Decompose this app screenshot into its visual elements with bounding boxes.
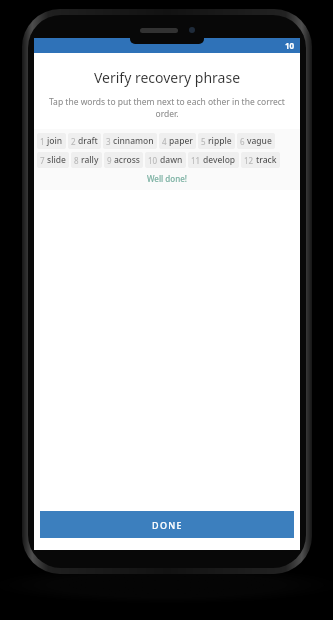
staticText: 2 <box>71 136 76 147</box>
staticText: ripple <box>208 135 232 147</box>
button[interactable]: Word 3 cinnamon <box>103 133 157 149</box>
staticText: DONE <box>152 519 183 531</box>
staticText: Verify recovery phrase <box>34 68 300 87</box>
staticText: 10 <box>148 155 158 166</box>
staticText: paper <box>169 135 193 147</box>
staticText: 11 <box>191 155 201 166</box>
button[interactable]: Word 1 join <box>37 133 66 149</box>
staticText: 12 <box>244 155 254 166</box>
staticText: 10 <box>285 40 295 51</box>
staticText: rally <box>81 154 99 166</box>
button[interactable]: Word 10 dawn <box>145 152 186 168</box>
staticText: 9 <box>107 155 112 166</box>
button[interactable]: Word 4 paper <box>159 133 196 149</box>
staticText: track <box>256 154 277 166</box>
button[interactable]: Word 12 track <box>241 152 280 168</box>
staticText: cinnamon <box>113 135 154 147</box>
staticText: 5 <box>201 136 206 147</box>
staticText: 3 <box>106 136 111 147</box>
staticText: Well done! <box>34 173 300 184</box>
staticText: across <box>114 154 140 166</box>
button[interactable]: DONE <box>40 511 294 538</box>
button[interactable]: Word 6 vague <box>237 133 275 149</box>
staticText: 6 <box>240 136 245 147</box>
staticText: 7 <box>40 155 45 166</box>
button[interactable]: Word 9 across <box>104 152 143 168</box>
staticText: 8 <box>74 155 79 166</box>
staticText: draft <box>78 135 98 147</box>
button[interactable]: Word 11 develop <box>188 152 239 168</box>
staticText: Tap the words to put them next to each o… <box>41 96 293 120</box>
staticText: vague <box>247 135 272 147</box>
button[interactable]: Word 2 draft <box>68 133 101 149</box>
staticText: slide <box>47 154 66 166</box>
staticText: 1 <box>40 136 45 147</box>
button[interactable]: Word 5 ripple <box>198 133 235 149</box>
staticText: join <box>47 135 63 147</box>
button[interactable]: Word 7 slide <box>37 152 69 168</box>
staticText: 4 <box>162 136 167 147</box>
button[interactable]: Word 8 rally <box>71 152 102 168</box>
staticText: dawn <box>160 154 183 166</box>
staticText: develop <box>203 154 236 166</box>
